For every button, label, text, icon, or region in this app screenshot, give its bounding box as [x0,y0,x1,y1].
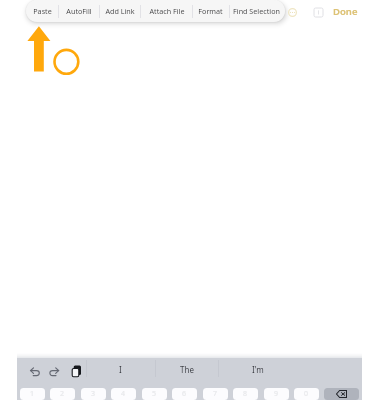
button[interactable]: Format [192,0,229,22]
button[interactable]: The [155,358,218,380]
button[interactable]: 6 [172,388,197,400]
button[interactable]: Add Link [99,0,140,22]
button[interactable]: Paste [26,0,58,22]
staticText: 6 [182,389,187,399]
button[interactable]: 4 [111,388,136,400]
staticText: I [119,364,122,375]
button[interactable]: Undo [27,364,43,380]
button[interactable]: More [288,8,297,17]
button[interactable]: AutoFill [58,0,99,22]
button[interactable]: 0 [294,388,319,400]
staticText: AutoFill [66,6,92,16]
button[interactable]: I [86,358,155,380]
button[interactable]: 5 [142,388,167,400]
staticText: The [180,364,194,375]
staticText: 9 [274,389,279,399]
button[interactable]: Paste [69,363,85,379]
staticText: 2 [60,389,65,399]
button[interactable]: Redo [47,364,63,380]
button[interactable]: 8 [233,388,258,400]
staticText: 4 [121,389,126,399]
staticText: 8 [243,389,248,399]
staticText: 1 [30,389,35,399]
staticText: Find Selection [233,6,280,16]
staticText: 0 [304,389,309,399]
button[interactable]: Find Selection [229,0,284,22]
staticText: 3 [91,389,96,399]
button[interactable]: 2 [50,388,75,400]
button[interactable]: 9 [264,388,289,400]
staticText: Done [333,5,358,18]
button[interactable]: Attach File [140,0,193,22]
button[interactable]: 7 [203,388,228,400]
staticText: 7 [213,389,218,399]
staticText: Format [198,6,223,16]
staticText: 5 [152,389,157,399]
staticText: Paste [33,6,52,16]
staticText: Attach File [149,6,185,16]
button[interactable]: 3 [81,388,106,400]
staticText: I'm [252,364,264,375]
button[interactable]: Done [330,4,361,19]
button[interactable]: Hide keyboard [314,8,323,17]
button[interactable]: Backspace [324,388,359,400]
button[interactable]: I'm [218,358,297,380]
staticText: Add Link [105,6,135,16]
button[interactable]: 1 [20,388,45,400]
